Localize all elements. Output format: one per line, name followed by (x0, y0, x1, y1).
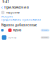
staticText: Недавно добавленные (1, 23, 37, 27)
staticText: Музыка (13, 28, 21, 32)
staticText: Приложения (4, 4, 29, 10)
button[interactable]: История (0, 15, 56, 18)
button[interactable]: Предложения приложений (0, 18, 56, 22)
button[interactable]: Музыка (0, 27, 56, 33)
staticText: Настройки (6, 11, 20, 14)
button[interactable]: Почта (0, 33, 56, 41)
staticText: ‹ (1, 3, 3, 11)
staticText: Открыть (42, 37, 49, 38)
staticText: Открыть (42, 29, 49, 31)
button[interactable]: Back (1, 4, 3, 9)
staticText: Почта (8, 36, 16, 39)
staticText: 9:41 (3, 0, 10, 4)
staticText: История (1, 15, 13, 18)
staticText: Предложения приложений (1, 18, 41, 21)
